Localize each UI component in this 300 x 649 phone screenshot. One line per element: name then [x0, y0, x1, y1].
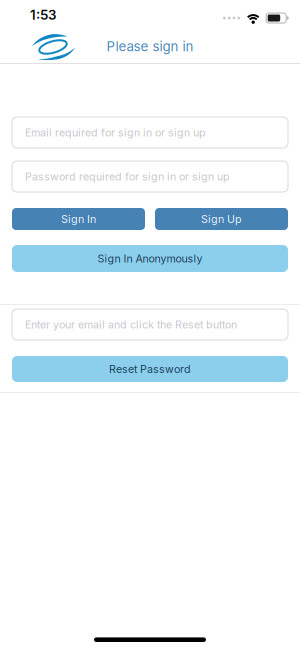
staticText: Email required for sign in or sign up	[25, 126, 206, 139]
button[interactable]: Reset Password	[12, 356, 288, 382]
button[interactable]: Password required for sign in or sign up	[12, 161, 288, 192]
staticText: Sign Up	[201, 213, 242, 225]
button[interactable]: Sign Up	[155, 208, 288, 230]
staticText: Reset Password	[109, 363, 191, 375]
staticText: Please sign in	[106, 39, 193, 54]
staticText: Sign In	[61, 213, 96, 225]
staticText: Enter your email and click the Reset but…	[25, 318, 237, 331]
staticText: Sign In Anonymously	[97, 252, 202, 265]
button[interactable]: Enter your email and click the Reset but…	[12, 309, 288, 340]
staticText: 1:53	[30, 7, 56, 23]
button[interactable]: Sign In Anonymously	[12, 245, 288, 272]
staticText: Password required for sign in or sign up	[25, 170, 230, 183]
button[interactable]: Email required for sign in or sign up	[12, 117, 288, 148]
button[interactable]: Sign In	[12, 208, 145, 230]
